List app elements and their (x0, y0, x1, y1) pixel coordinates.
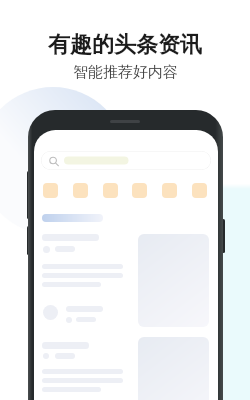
button[interactable]: Search (41, 151, 211, 170)
staticText: 有趣的头条资讯 (48, 31, 202, 59)
button[interactable] (132, 183, 147, 198)
button[interactable] (43, 183, 58, 198)
button[interactable] (192, 183, 207, 198)
staticText: 智能推荐好内容 (73, 63, 178, 82)
button[interactable] (42, 214, 103, 222)
button[interactable] (73, 183, 88, 198)
button[interactable] (103, 183, 118, 198)
button[interactable] (162, 183, 177, 198)
button[interactable] (138, 234, 209, 327)
